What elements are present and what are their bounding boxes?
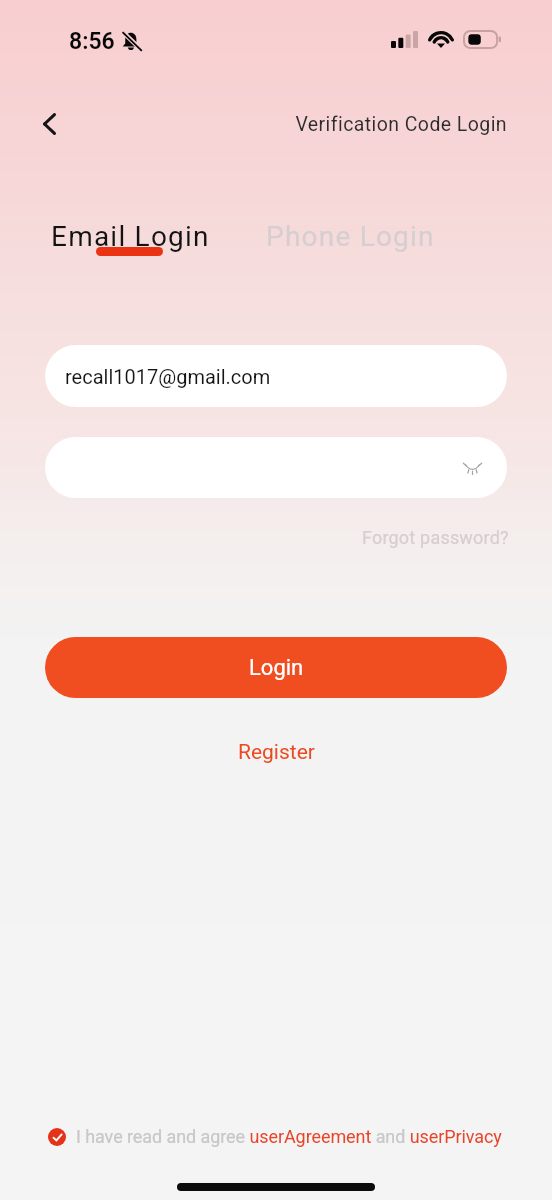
staticText: Phone Login bbox=[266, 220, 435, 253]
button[interactable]: Show password bbox=[45, 437, 507, 498]
button[interactable]: Forgot password? bbox=[362, 525, 552, 550]
staticText: Register bbox=[238, 740, 315, 765]
button[interactable]: Register bbox=[226, 736, 327, 769]
button[interactable]: Email Login bbox=[45, 218, 216, 255]
button[interactable]: Phone Login bbox=[260, 218, 441, 255]
staticText: 8:56 bbox=[69, 28, 115, 55]
button[interactable]: I have read and agree userAgreement and … bbox=[76, 1126, 502, 1147]
button[interactable]: recall1017@gmail.com bbox=[45, 345, 507, 407]
staticText: Forgot password? bbox=[362, 527, 509, 548]
button[interactable]: Show password bbox=[453, 449, 491, 487]
button[interactable]: Agree to terms bbox=[48, 1128, 66, 1146]
staticText: recall1017@gmail.com bbox=[65, 365, 271, 388]
staticText: Verification Code Login bbox=[0, 113, 507, 136]
staticText: Email Login bbox=[51, 220, 210, 253]
button[interactable]: Back bbox=[27, 101, 72, 146]
staticText: Login bbox=[249, 655, 304, 681]
button[interactable]: Login bbox=[45, 637, 507, 698]
